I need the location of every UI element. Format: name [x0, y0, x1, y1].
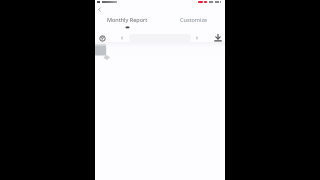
button[interactable]: Back: [96, 6, 103, 13]
button[interactable]: Next period: [194, 35, 200, 41]
button[interactable]: Monthly Report: [100, 16, 154, 28]
staticText: Customize: [180, 16, 208, 23]
staticText: Monthly Report: [107, 16, 148, 23]
button[interactable]: Previous period: [119, 35, 125, 41]
button[interactable]: Customize: [168, 16, 220, 28]
button[interactable]: Help: [99, 35, 106, 42]
button[interactable]: Support chat: [95, 43, 107, 57]
button[interactable]: Download: [214, 34, 222, 42]
